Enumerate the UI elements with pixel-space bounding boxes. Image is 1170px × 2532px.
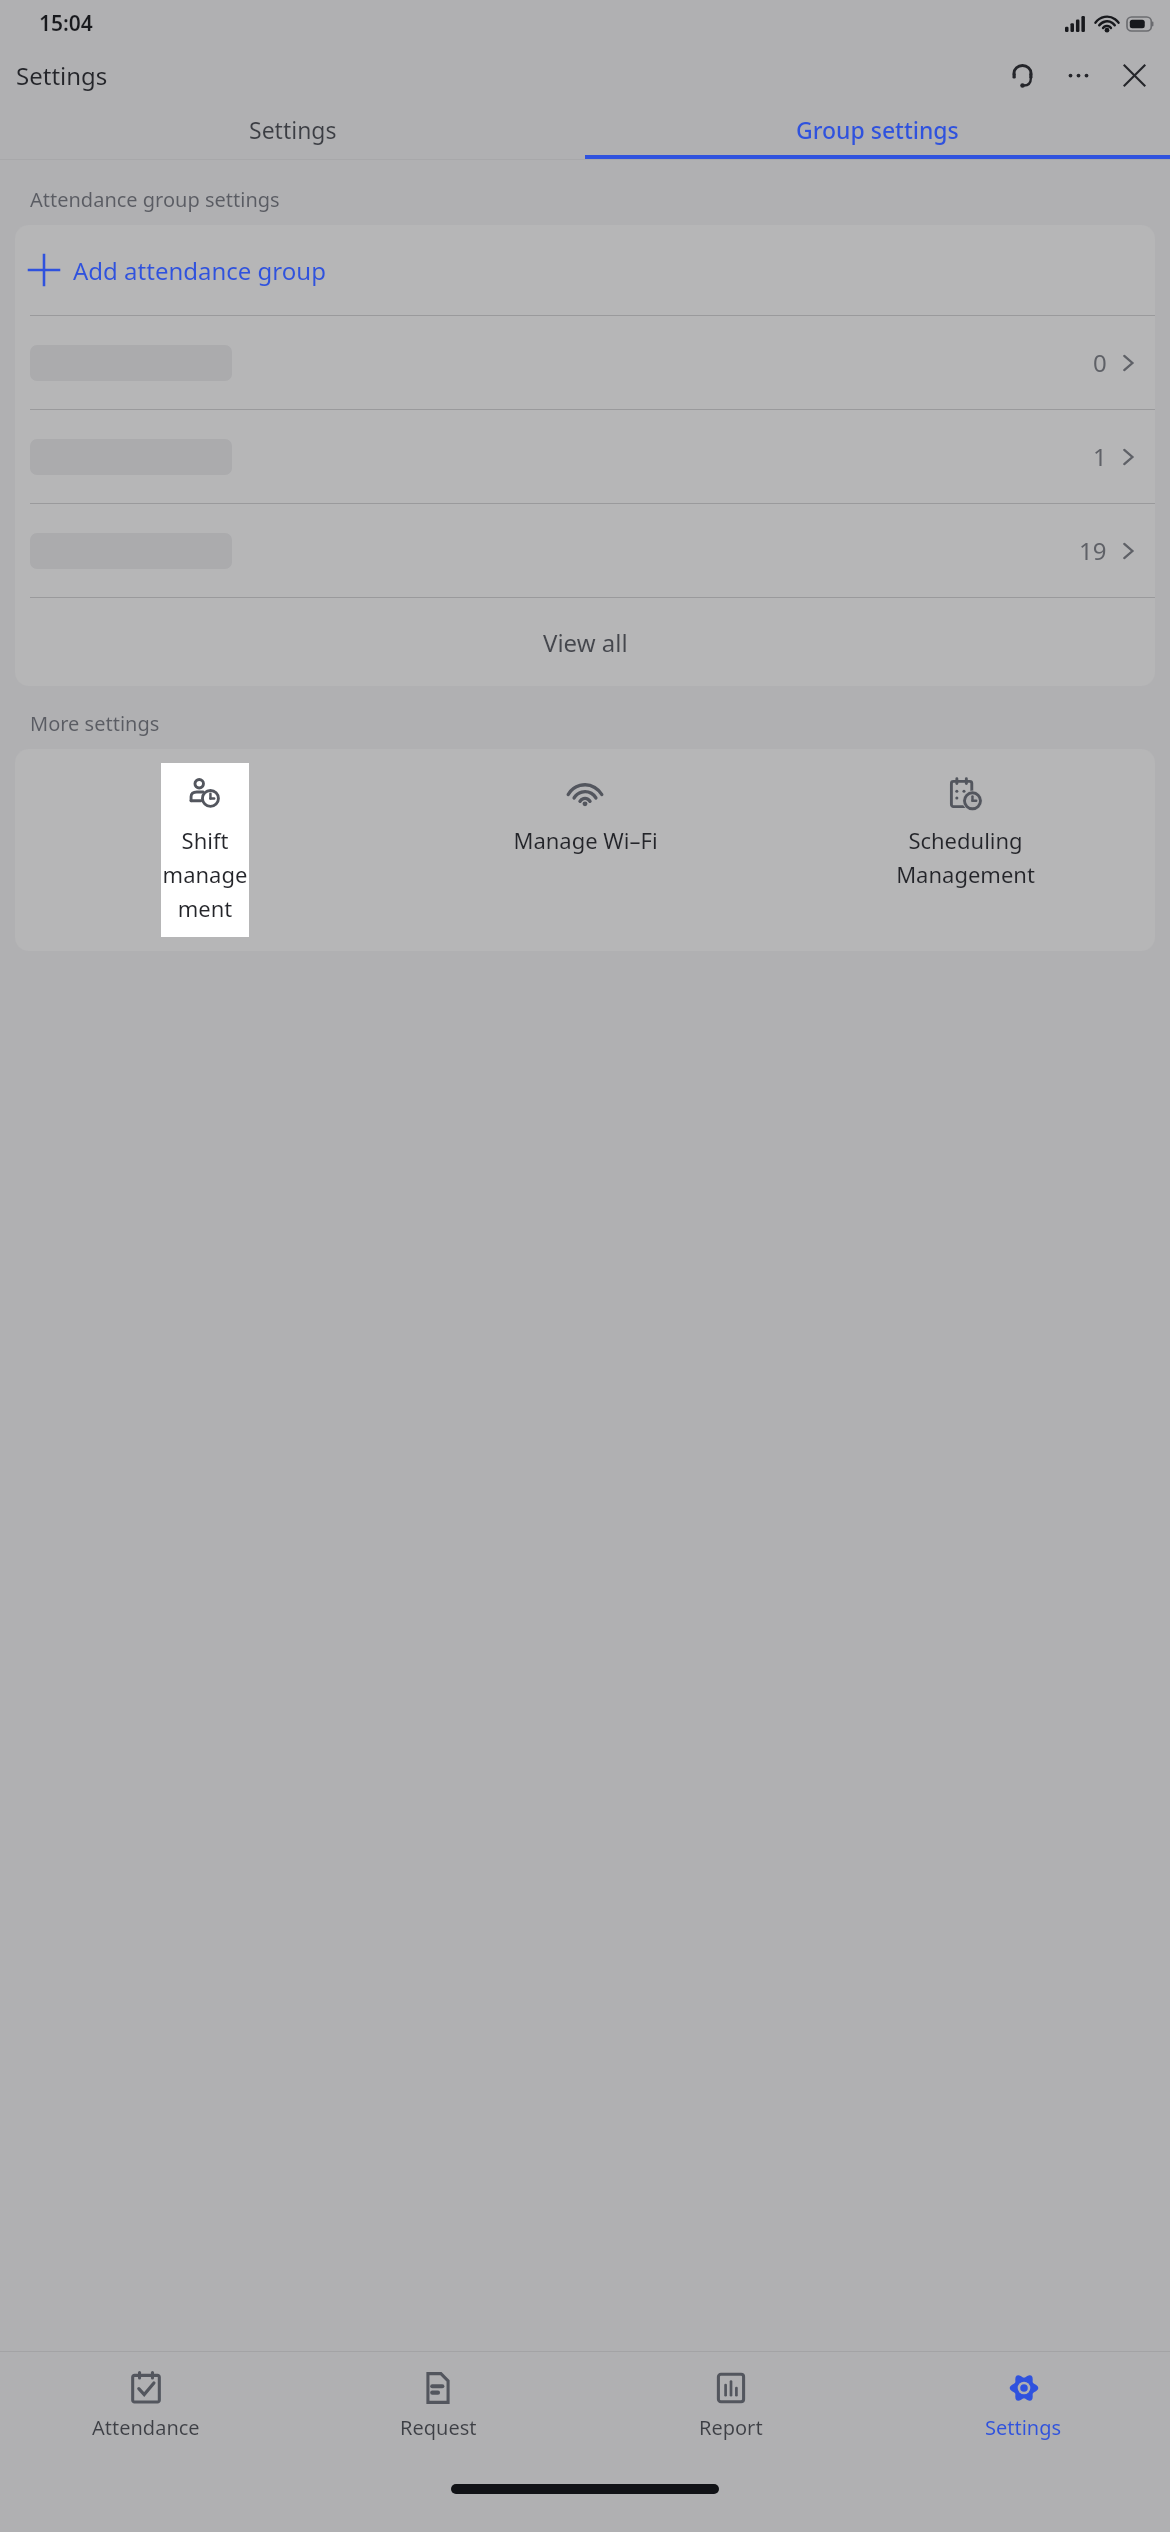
staticText: Request: [400, 2414, 477, 2441]
button[interactable]: 1: [15, 410, 1155, 503]
button[interactable]: Support: [1000, 53, 1044, 97]
button[interactable]: Request: [292, 2352, 584, 2472]
button[interactable]: Settings: [877, 2352, 1170, 2472]
staticText: 0: [1093, 346, 1107, 379]
staticText: Settings: [985, 2414, 1062, 2441]
staticText: 15:04: [39, 9, 93, 38]
staticText: View all: [543, 626, 628, 659]
button[interactable]: Settings: [0, 103, 585, 155]
staticText: Settings: [249, 114, 337, 145]
button[interactable]: Close: [1112, 53, 1156, 97]
button[interactable]: 19: [15, 504, 1155, 597]
staticText: Report: [699, 2414, 763, 2441]
button[interactable]: More options: [1056, 53, 1100, 97]
button[interactable]: 0: [15, 316, 1155, 409]
staticText: Manage Wi–Fi: [513, 825, 658, 855]
staticText: Scheduling Management: [896, 825, 1035, 889]
staticText: Group settings: [796, 114, 959, 145]
button[interactable]: Shift management: [161, 763, 249, 937]
staticText: 19: [1079, 534, 1107, 567]
staticText: Attendance: [92, 2414, 200, 2441]
staticText: More settings: [30, 710, 160, 737]
button[interactable]: Scheduling Management: [775, 763, 1155, 903]
staticText: Attendance group settings: [30, 186, 280, 213]
staticText: Shift management: [161, 825, 249, 923]
button[interactable]: Report: [584, 2352, 877, 2472]
button[interactable]: Manage Wi–Fi: [395, 763, 775, 869]
button[interactable]: View all: [15, 598, 1155, 686]
button[interactable]: Add attendance group: [15, 225, 1155, 315]
staticText: Add attendance group: [73, 254, 326, 287]
button[interactable]: Group settings: [585, 103, 1170, 155]
staticText: 1: [1093, 440, 1107, 473]
button[interactable]: Attendance: [0, 2352, 292, 2472]
staticText: Settings: [16, 59, 108, 92]
